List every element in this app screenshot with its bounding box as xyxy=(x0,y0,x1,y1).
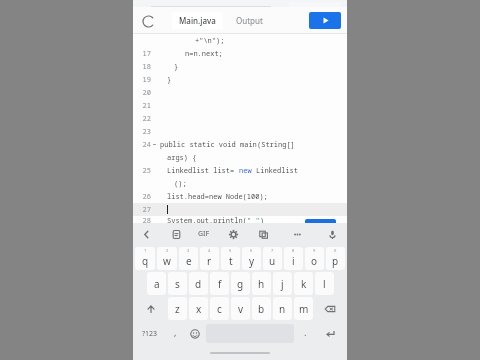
button[interactable]: z xyxy=(168,297,187,320)
staticText: 21 xyxy=(138,101,151,111)
staticText: 4 xyxy=(208,248,211,253)
button[interactable]: l xyxy=(315,272,334,295)
staticText: n xyxy=(279,302,286,316)
staticText: 20 xyxy=(138,88,151,98)
staticText: 19 xyxy=(138,75,151,85)
button[interactable]: Translate xyxy=(254,225,272,243)
staticText: 2 xyxy=(166,248,169,253)
button[interactable]: j xyxy=(273,272,292,295)
button[interactable]: Enter xyxy=(316,322,345,345)
staticText: w xyxy=(163,254,171,268)
button[interactable]: m xyxy=(294,297,313,320)
button[interactable]: ?123 xyxy=(135,322,164,345)
button[interactable]: x xyxy=(189,297,208,320)
staticText: 9 xyxy=(313,248,316,253)
staticText: +"\n"); xyxy=(195,36,225,46)
staticText: ) xyxy=(260,216,265,223)
button[interactable]: 9 xyxy=(305,247,324,270)
staticText: f xyxy=(218,277,222,291)
button[interactable]: Main.java xyxy=(172,12,223,29)
button[interactable]: 7 xyxy=(263,247,282,270)
button[interactable]: b xyxy=(252,297,271,320)
staticText: Linkedlist xyxy=(256,166,298,176)
button[interactable]: k xyxy=(294,272,313,295)
staticText: } xyxy=(174,62,179,72)
staticText: j xyxy=(281,277,284,291)
staticText: 5 xyxy=(229,248,232,253)
staticText: System.out.println( xyxy=(167,216,247,223)
button[interactable]: 1 xyxy=(135,247,155,270)
button[interactable]: Backspace xyxy=(315,297,345,320)
staticText: v xyxy=(238,302,244,316)
button[interactable]: g xyxy=(231,272,250,295)
button[interactable]: Clipboard xyxy=(167,225,185,243)
staticText: n=n.next; xyxy=(185,49,223,59)
staticText: 23 xyxy=(138,127,151,137)
button[interactable]: More options xyxy=(288,225,306,243)
button[interactable]: d xyxy=(189,272,208,295)
button[interactable]: c xyxy=(210,297,229,320)
staticText: h xyxy=(258,277,265,291)
staticText: t xyxy=(229,254,233,268)
button[interactable]: 2 xyxy=(157,247,177,270)
button[interactable]: h xyxy=(252,272,271,295)
staticText: r xyxy=(207,254,212,268)
staticText: public static void xyxy=(160,140,240,150)
staticText: 1 xyxy=(144,248,147,253)
staticText: , xyxy=(174,326,177,338)
staticText: d xyxy=(195,277,202,291)
staticText: 3 xyxy=(187,248,190,253)
button[interactable]: Toggle theme xyxy=(138,11,158,31)
button[interactable]: , xyxy=(166,322,184,345)
button[interactable]: Output xyxy=(229,12,270,29)
button[interactable]: Voice input xyxy=(323,225,341,243)
button[interactable]: Emoji xyxy=(186,322,204,345)
button[interactable]: GIF xyxy=(196,225,212,243)
staticText: ?123 xyxy=(142,329,158,339)
staticText: new xyxy=(239,166,256,176)
staticText: main xyxy=(240,140,257,150)
staticText: (String[] xyxy=(257,140,295,150)
button[interactable]: 3 xyxy=(179,247,198,270)
button[interactable]: Back xyxy=(137,225,155,243)
staticText: 17 xyxy=(138,49,151,59)
button[interactable]: Run xyxy=(309,12,341,29)
staticText: args) { xyxy=(167,153,197,163)
button[interactable]: 8 xyxy=(284,247,303,270)
button[interactable]: v xyxy=(231,297,250,320)
staticText: a xyxy=(154,277,160,291)
staticText: Main.java xyxy=(179,15,216,26)
staticText: 22 xyxy=(138,114,151,124)
staticText: 0 xyxy=(334,248,337,253)
staticText: list.head=new Node(100); xyxy=(167,192,268,202)
staticText: } xyxy=(167,75,172,85)
button[interactable]: 6 xyxy=(242,247,261,270)
button[interactable]: 4 xyxy=(200,247,219,270)
staticText: Run xyxy=(314,221,328,231)
staticText: (); xyxy=(174,179,187,189)
staticText: o xyxy=(311,254,318,268)
button[interactable]: f xyxy=(210,272,229,295)
staticText: i xyxy=(292,254,295,268)
button[interactable]: n xyxy=(273,297,292,320)
button[interactable]: 5 xyxy=(221,247,240,270)
staticText: 24 xyxy=(138,140,151,150)
button[interactable]: a xyxy=(147,272,166,295)
staticText: b xyxy=(258,302,265,316)
staticText: 8 xyxy=(292,248,295,253)
staticText: p xyxy=(332,254,339,268)
button[interactable]: . xyxy=(296,322,314,345)
button[interactable]: Run xyxy=(305,219,336,233)
staticText: l xyxy=(323,277,326,291)
button[interactable]: Shift xyxy=(135,297,166,320)
staticText: g xyxy=(237,277,244,291)
staticText: GIF xyxy=(198,229,210,239)
button[interactable]: s xyxy=(168,272,187,295)
button[interactable]: 0 xyxy=(326,247,345,270)
staticText: . xyxy=(304,326,307,338)
button[interactable]: Settings xyxy=(224,225,242,243)
staticText: 28 xyxy=(138,216,151,223)
staticText: c xyxy=(217,302,222,316)
staticText: s xyxy=(175,277,180,291)
